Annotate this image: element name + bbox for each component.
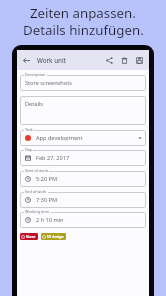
button[interactable] (20, 192, 146, 208)
staticText: Store (26, 234, 36, 239)
button[interactable] (20, 130, 146, 146)
staticText: Day (25, 147, 32, 152)
button[interactable]: Save (134, 55, 145, 66)
staticText: Working time (25, 209, 50, 214)
staticText: Task (25, 127, 33, 132)
button[interactable] (20, 75, 146, 91)
staticText: Store screenshots (25, 79, 72, 87)
button[interactable]: Back (20, 54, 32, 66)
staticText: 5:20 PM (36, 175, 58, 183)
button[interactable] (20, 171, 146, 187)
staticText: Start of work (25, 168, 48, 173)
staticText: 2 h 10 min (36, 216, 64, 224)
staticText: Description (25, 72, 46, 77)
button[interactable] (20, 96, 146, 125)
staticText: 7:30 PM (36, 196, 58, 204)
staticText: Work unit (37, 56, 66, 64)
staticText: Details (25, 100, 43, 108)
staticText: Details hinzufügen. (23, 21, 144, 38)
button[interactable] (20, 150, 146, 166)
staticText: Feb 27, 2017 (36, 154, 70, 162)
staticText: App development (36, 134, 83, 142)
button[interactable]: Delete (119, 55, 130, 66)
button[interactable]: Store (20, 233, 38, 240)
staticText: UI design (47, 234, 64, 239)
button[interactable]: Share (104, 55, 115, 66)
staticText: Zeiten anpassen. (30, 4, 136, 21)
button[interactable]: UI design (41, 233, 66, 240)
button[interactable] (20, 212, 146, 228)
staticText: End of work (25, 189, 47, 194)
